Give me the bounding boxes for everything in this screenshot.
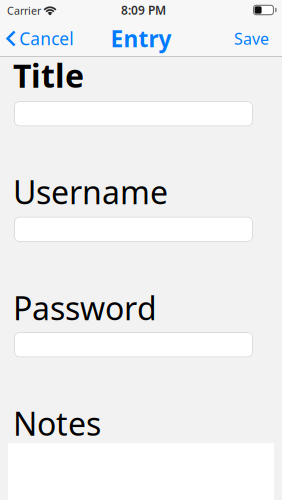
staticText: Entry	[110, 23, 171, 53]
button[interactable]: Username	[14, 217, 253, 242]
button[interactable]: Password	[14, 332, 253, 357]
staticText: Username	[13, 170, 168, 213]
button[interactable]: Title	[14, 101, 253, 126]
staticText: Password	[13, 286, 157, 329]
button[interactable]: Save	[224, 20, 282, 57]
staticText: Save	[234, 28, 269, 49]
staticText: Title	[13, 54, 84, 96]
staticText: 8:09 PM	[121, 2, 166, 18]
staticText: Cancel	[19, 27, 73, 50]
staticText: Notes	[13, 402, 101, 444]
button[interactable]: Cancel	[0, 20, 83, 57]
staticText: Carrier	[7, 3, 41, 18]
